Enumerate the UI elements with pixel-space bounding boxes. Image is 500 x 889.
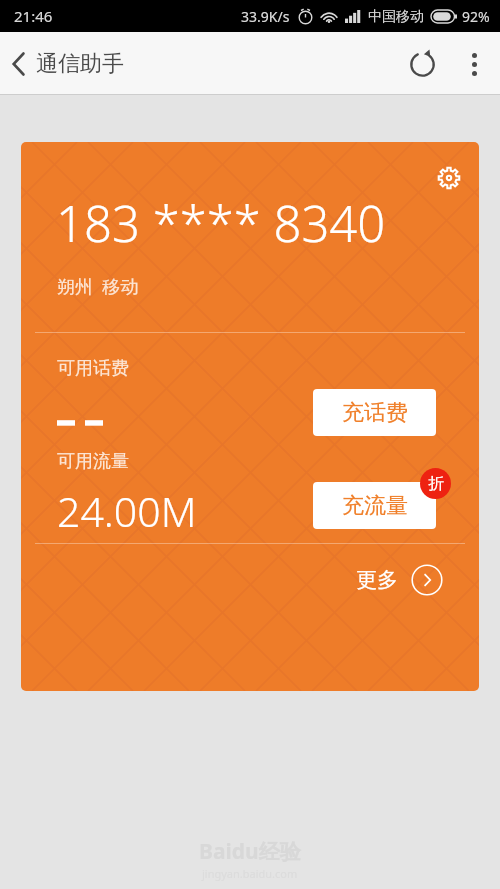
button[interactable]: 通信助手: [0, 42, 136, 86]
staticText: Baidu经验: [199, 837, 301, 866]
button[interactable]: Refresh: [396, 38, 448, 90]
staticText: 折: [428, 474, 444, 494]
staticText: 183 **** 8340: [56, 190, 386, 257]
staticText: 充流量: [342, 492, 408, 520]
staticText: 更多: [356, 567, 398, 593]
staticText: 中国移动: [368, 8, 424, 26]
staticText: 33.9K/s: [241, 7, 290, 26]
button[interactable]: 充流量: [313, 482, 436, 529]
staticText: 充话费: [342, 399, 408, 427]
staticText: 92%: [462, 7, 490, 26]
button[interactable]: More options: [448, 38, 500, 90]
button[interactable]: Settings: [427, 156, 471, 200]
staticText: 通信助手: [36, 50, 124, 78]
staticText: 可用流量: [57, 450, 129, 473]
button[interactable]: 充话费: [313, 389, 436, 436]
staticText: 24.00M: [57, 483, 197, 529]
staticText: 21:46: [14, 6, 53, 26]
button[interactable]: 更多: [21, 544, 479, 616]
staticText: 朔州 移动: [57, 274, 139, 299]
staticText: 可用话费: [57, 357, 129, 380]
